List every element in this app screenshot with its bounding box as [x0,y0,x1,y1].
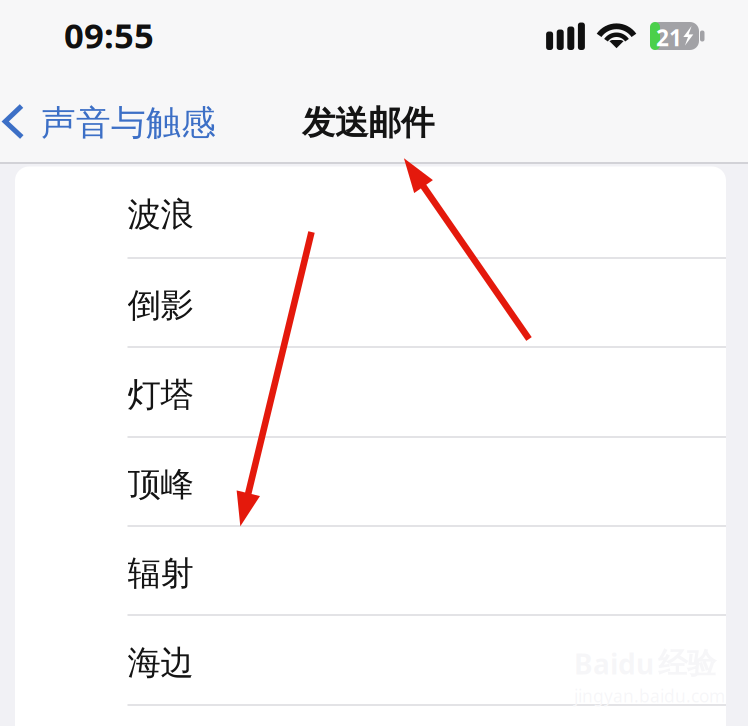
staticText: 经验 [658,646,716,682]
staticText: 海边 [127,642,193,683]
staticText: 波浪 [127,194,193,235]
button[interactable]: 倒影 [15,259,726,348]
staticText: Baidu [574,645,654,682]
staticText: 声音与触感 [41,102,216,144]
staticText: 辐射 [127,553,193,594]
staticText: jingyan.baidu.com [574,684,725,707]
staticText: 21 [656,22,682,52]
button[interactable]: 海边 [15,616,726,706]
button[interactable]: 波浪 [15,166,726,259]
staticText: 顶峰 [127,464,193,505]
staticText: 倒影 [127,285,193,326]
staticText: 09:55 [64,12,154,58]
button[interactable]: 声音与触感 [0,94,216,152]
staticText: 灯塔 [127,374,193,415]
staticText: 发送邮件 [302,102,434,143]
button[interactable]: 辐射 [15,527,726,616]
button[interactable]: 顶峰 [15,438,726,527]
button[interactable]: 灯塔 [15,348,726,438]
